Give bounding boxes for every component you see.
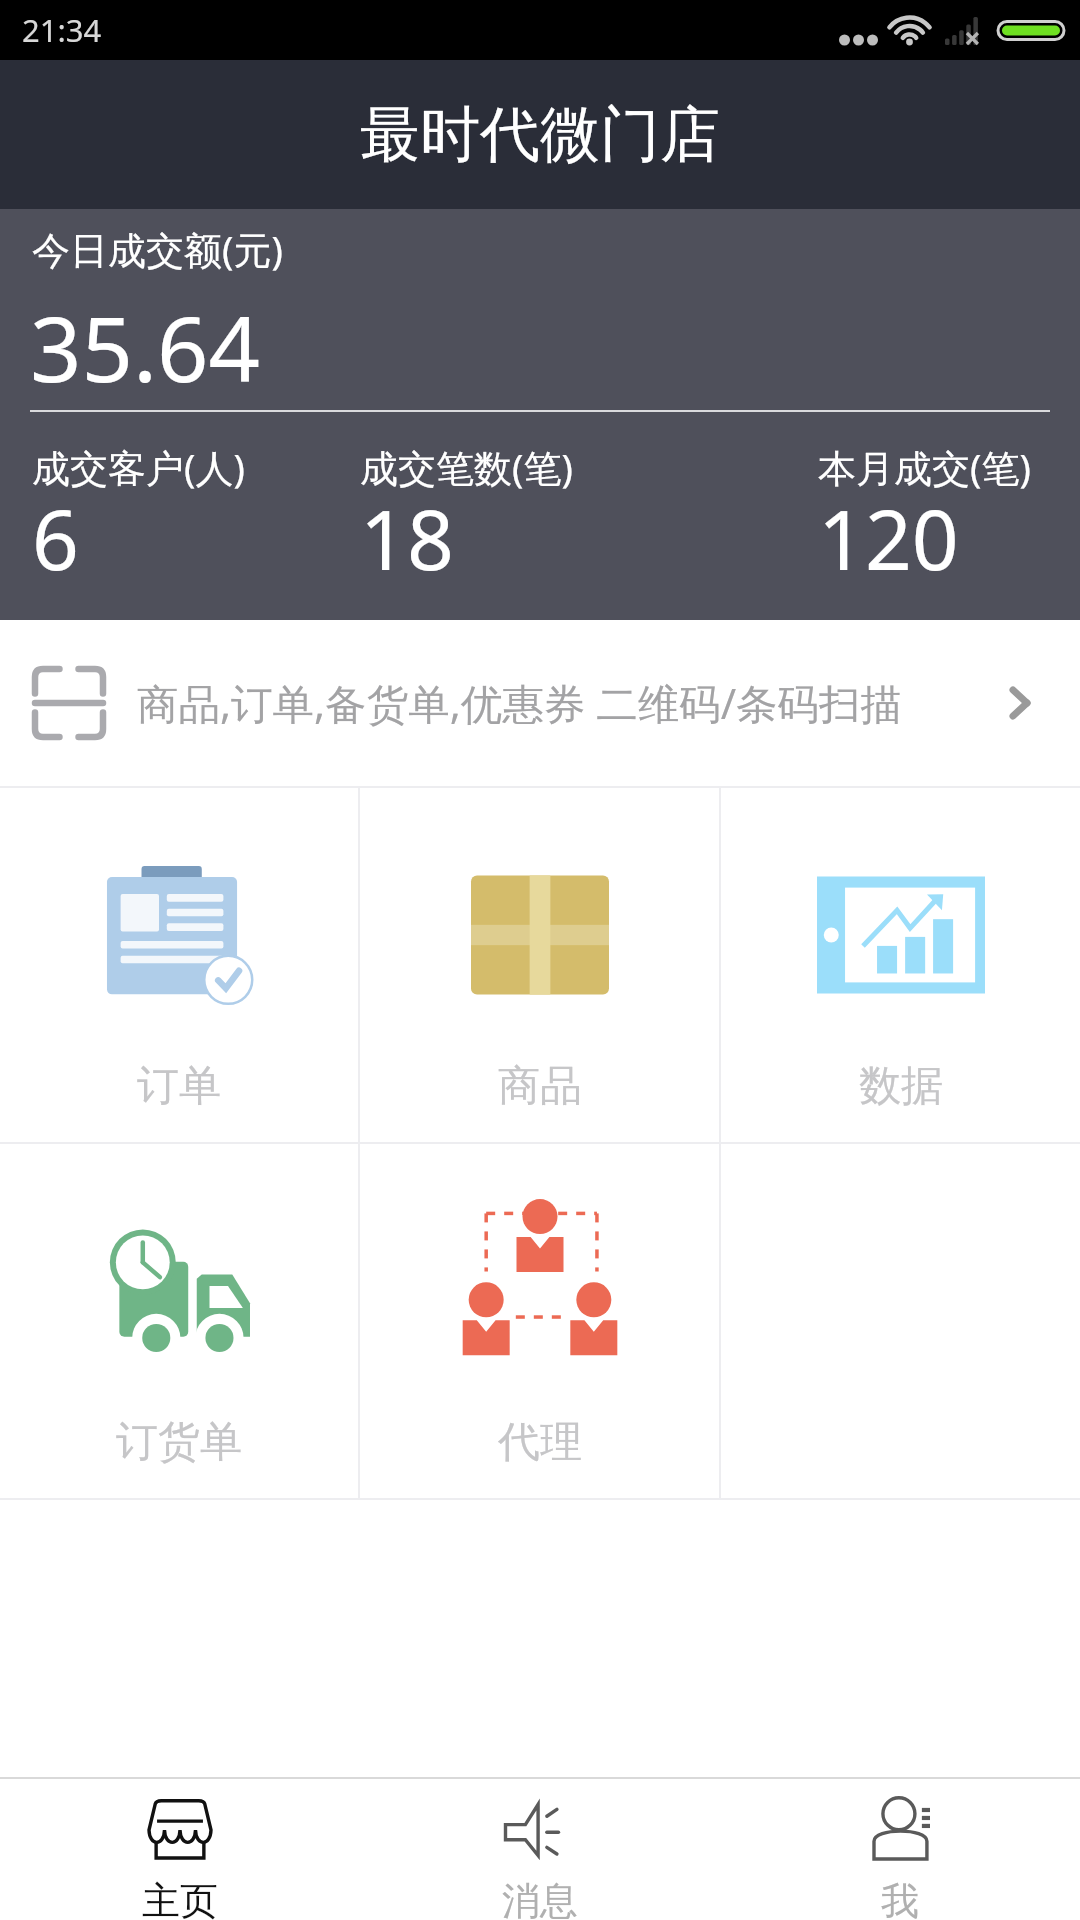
staticText: 代理 <box>498 1416 582 1469</box>
button[interactable]: 订单 <box>0 788 358 1142</box>
staticText: 成交客户(人) <box>32 441 245 493</box>
staticText: 订货单 <box>116 1416 242 1469</box>
staticText: 商品 <box>498 1060 582 1113</box>
staticText: 主页 <box>142 1877 218 1920</box>
staticText: 成交笔数(笔) <box>360 441 573 493</box>
staticText: 35.64 <box>30 286 261 409</box>
button[interactable]: 我 <box>720 1779 1080 1920</box>
staticText: 本月成交(笔) <box>818 441 1031 493</box>
staticText: 我 <box>881 1877 919 1920</box>
staticText: 21:34 <box>22 9 102 51</box>
button[interactable]: 消息 <box>360 1779 720 1920</box>
button[interactable]: 代理 <box>360 1144 719 1498</box>
button[interactable]: 订货单 <box>0 1144 358 1498</box>
staticText: 120 <box>818 482 959 594</box>
staticText: 18 <box>360 482 454 594</box>
staticText: 商品,订单,备货单,优惠券 二维码/条码扫描 <box>137 675 903 732</box>
button[interactable]: 扫一扫 商品,订单,备货单,优惠券 二维码/条码扫描 <box>0 620 1080 786</box>
button[interactable]: 主页 <box>0 1779 360 1920</box>
staticText: 订单 <box>137 1060 221 1113</box>
staticText: 今日成交额(元) <box>32 223 283 275</box>
button[interactable]: 商品 <box>360 788 719 1142</box>
staticText: 数据 <box>859 1060 943 1113</box>
staticText: 6 <box>32 482 79 594</box>
staticText: 消息 <box>502 1877 578 1920</box>
staticText: 最时代微门店 <box>360 97 720 173</box>
button[interactable]: 数据 <box>721 788 1080 1142</box>
